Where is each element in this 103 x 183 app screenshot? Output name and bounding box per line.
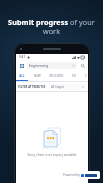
staticText: C — [85, 74, 87, 78]
button[interactable]: All Stages — [49, 84, 86, 90]
staticText: IN PROGRESS — [65, 74, 83, 78]
staticText: Submit progress of your work — [6, 17, 97, 36]
button[interactable]: RECEIVED — [47, 71, 65, 80]
button[interactable]: NEW — [28, 71, 47, 80]
staticText: 9:41 — [19, 55, 26, 59]
button[interactable]: IN PROGRESS — [65, 71, 83, 80]
button[interactable]: Powered by — [60, 171, 100, 179]
staticText: FILTER ATTRIBUTES — [18, 85, 46, 89]
staticText: Powered by — [63, 173, 80, 177]
staticText: ALL — [19, 74, 25, 78]
button[interactable]: Menu — [18, 62, 25, 69]
staticText: NEW — [34, 74, 41, 78]
staticText: All Stages — [51, 85, 82, 89]
staticText: Sorry, there is no inquiry available — [20, 153, 84, 157]
button[interactable]: Engineering — [27, 62, 77, 69]
button[interactable]: ALL — [16, 71, 28, 80]
staticText: RECEIVED — [49, 74, 64, 78]
button[interactable]: C — [83, 71, 88, 80]
button[interactable]: Search — [79, 62, 86, 69]
staticText: Engineering — [29, 63, 72, 68]
